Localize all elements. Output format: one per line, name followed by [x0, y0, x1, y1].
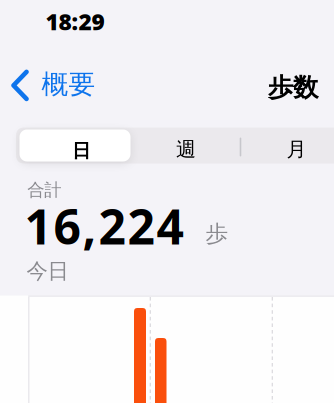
button[interactable]: 月	[240, 127, 334, 163]
button[interactable]: 日	[19, 127, 130, 163]
staticText: 日	[72, 139, 91, 162]
staticText: 今日	[27, 258, 69, 284]
staticText: 16,224	[24, 194, 183, 258]
staticText: 概要	[41, 68, 95, 101]
button[interactable]: 概要	[11, 68, 101, 98]
staticText: 週	[176, 137, 196, 162]
button[interactable]: 週	[130, 127, 240, 163]
staticText: 月	[286, 137, 306, 162]
staticText: 歩数	[268, 72, 318, 103]
staticText: 合計	[27, 179, 61, 201]
staticText: 歩	[205, 220, 228, 247]
staticText: 18:29	[45, 6, 104, 37]
